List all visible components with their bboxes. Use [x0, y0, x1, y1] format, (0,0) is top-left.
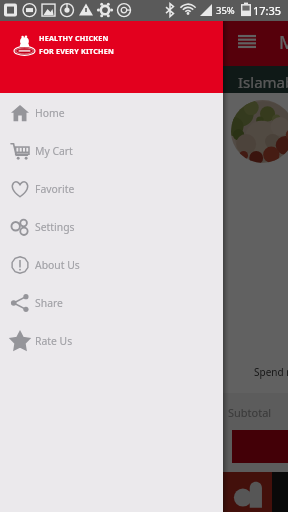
staticText: Spend more for free delivery: [254, 365, 288, 379]
button[interactable]: Favorite: [0, 170, 223, 208]
staticText: 35%: [216, 4, 235, 17]
staticText: Settings: [35, 220, 75, 234]
staticText: Favorite: [35, 182, 75, 196]
staticText: Menu: [279, 30, 288, 55]
button[interactable]: [231, 100, 288, 163]
staticText: My Cart: [35, 144, 73, 158]
button[interactable]: Home: [0, 94, 223, 132]
staticText: Rate Us: [35, 334, 73, 348]
button[interactable]: My Cart: [0, 132, 223, 170]
staticText: HEALTHY CHICKEN: [39, 33, 109, 43]
button[interactable]: About Us: [0, 246, 223, 284]
staticText: Share: [35, 296, 63, 310]
staticText: About Us: [35, 258, 80, 272]
button[interactable]: Share: [0, 284, 223, 322]
staticText: Home: [35, 106, 65, 120]
staticText: Islamabad: [238, 72, 288, 92]
button[interactable]: Rate Us: [0, 322, 223, 360]
button[interactable]: Settings: [0, 208, 223, 246]
staticText: Subtotal: [228, 405, 272, 420]
button[interactable]: Open navigation menu: [238, 35, 256, 48]
staticText: FOR EVERY KITCHEN: [39, 46, 114, 56]
staticText: 17:35: [253, 3, 282, 18]
